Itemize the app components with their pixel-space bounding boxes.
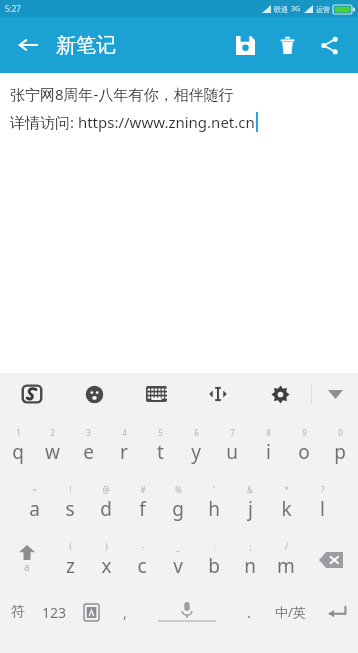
button[interactable]: _ [160, 531, 196, 588]
button[interactable]: ? [304, 474, 340, 531]
button[interactable]: Shift [0, 531, 53, 588]
staticText: 1 [16, 427, 21, 438]
staticText: : [213, 541, 216, 552]
staticText: u [226, 439, 238, 465]
staticText: a [24, 560, 30, 574]
staticText: / [285, 541, 288, 552]
staticText: # [140, 484, 146, 495]
button[interactable]: 0 [322, 417, 358, 474]
staticText: f [139, 496, 146, 522]
button[interactable]: 9 [286, 417, 322, 474]
staticText: 2 [50, 427, 55, 438]
staticText: 3G [291, 4, 301, 14]
staticText: ) [105, 541, 108, 552]
staticText: & [247, 484, 253, 495]
button[interactable]: 2 [35, 417, 70, 474]
staticText: ; [249, 541, 252, 552]
staticText: 符 [11, 603, 25, 621]
button[interactable]: . [233, 588, 265, 636]
staticText: 9 [302, 427, 307, 438]
staticText: w [45, 439, 60, 465]
staticText: s [65, 496, 75, 522]
button[interactable]: Share [308, 24, 350, 66]
button[interactable]: Backspace [304, 531, 358, 588]
button[interactable]: # [124, 474, 160, 531]
button[interactable]: 符 [0, 588, 35, 636]
button[interactable]: 7 [214, 417, 250, 474]
button[interactable]: ( [53, 531, 88, 588]
button[interactable]: 4 [106, 417, 142, 474]
staticText: e [83, 439, 94, 465]
button[interactable]: 3 [70, 417, 106, 474]
button[interactable]: , [109, 588, 141, 636]
button[interactable]: - [124, 531, 160, 588]
button[interactable]: * [268, 474, 304, 531]
button[interactable]: / [268, 531, 304, 588]
button[interactable]: Sogou input [0, 373, 63, 415]
button[interactable]: Keyboard layout [125, 373, 187, 415]
staticText: n [244, 553, 256, 579]
button[interactable]: 中/英 [265, 588, 315, 636]
staticText: 3 [86, 427, 91, 438]
button[interactable]: 新笔记 [56, 33, 116, 58]
staticText: z [66, 553, 75, 579]
button[interactable]: Settings [249, 373, 311, 415]
button[interactable]: ' [196, 474, 232, 531]
staticText: - [141, 541, 144, 552]
button[interactable]: & [232, 474, 268, 531]
staticText: v [173, 553, 183, 579]
staticText: m [277, 553, 295, 579]
button[interactable]: Emoji [63, 373, 125, 415]
button[interactable]: @ [88, 474, 124, 531]
staticText: 详情访问: https://www.zning.net.cn [10, 112, 255, 132]
staticText: l [320, 496, 325, 522]
staticText: x [101, 553, 112, 579]
button[interactable]: Back [8, 25, 48, 65]
button[interactable]: : [196, 531, 232, 588]
staticText: 8 [266, 427, 271, 438]
button[interactable]: Hide keyboard [312, 373, 358, 415]
button[interactable]: Space, voice input [141, 588, 233, 636]
staticText: ' [213, 484, 215, 495]
button[interactable]: ; [232, 531, 268, 588]
staticText: ? [321, 484, 325, 495]
button[interactable]: Input method [74, 588, 109, 636]
staticText: ~ [32, 484, 37, 495]
staticText: o [298, 439, 310, 465]
button[interactable]: Delete [266, 24, 308, 66]
staticText: y [191, 439, 201, 465]
staticText: b [208, 553, 220, 579]
button[interactable]: 1 [0, 417, 35, 474]
staticText: 123 [42, 603, 67, 622]
button[interactable]: 6 [178, 417, 214, 474]
staticText: a [29, 496, 40, 522]
button[interactable]: 5 [142, 417, 178, 474]
staticText: 7 [230, 427, 235, 438]
staticText: 6 [194, 427, 199, 438]
staticText: 中/英 [275, 603, 306, 621]
staticText: t [157, 439, 164, 465]
staticText: , [123, 603, 127, 622]
staticText: h [208, 496, 220, 522]
staticText: % [175, 484, 182, 495]
button[interactable]: Enter [315, 588, 358, 636]
staticText: 5 [158, 427, 163, 438]
button[interactable]: Move cursor [187, 373, 249, 415]
staticText: d [100, 496, 112, 522]
button[interactable]: 8 [250, 417, 286, 474]
button[interactable]: ! [52, 474, 88, 531]
staticText: k [281, 496, 292, 522]
button[interactable]: % [160, 474, 196, 531]
staticText: * [284, 484, 289, 495]
staticText: 联通 [274, 5, 288, 14]
button[interactable]: 123 [35, 588, 74, 636]
button[interactable]: ~ [17, 474, 52, 531]
staticText: 张宁网8周年-八年有你，相伴随行 [10, 84, 234, 104]
staticText: ( [69, 541, 72, 552]
staticText: c [137, 553, 147, 579]
staticText: g [172, 496, 184, 522]
button[interactable]: ) [88, 531, 124, 588]
staticText: i [266, 439, 271, 465]
button[interactable]: Save [224, 24, 266, 66]
staticText: 运营 [316, 5, 330, 14]
